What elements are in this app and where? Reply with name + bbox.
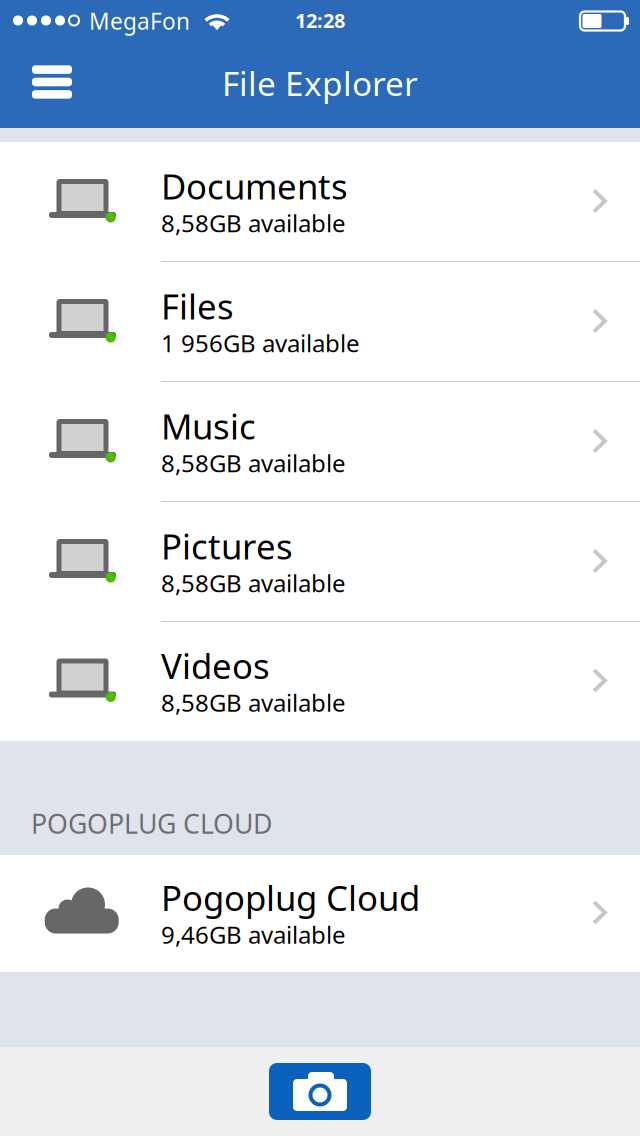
staticText: Videos: [161, 642, 270, 688]
staticText: 8,58GB available: [161, 567, 346, 599]
staticText: Files: [161, 283, 234, 329]
staticText: Music: [161, 403, 256, 449]
button[interactable]: Pictures: [0, 502, 640, 622]
staticText: 8,58GB available: [161, 686, 346, 718]
button[interactable]: Pogoplug Cloud: [0, 855, 640, 972]
button[interactable]: Music: [0, 382, 640, 502]
staticText: 12:28: [295, 7, 345, 34]
staticText: 8,58GB available: [161, 447, 346, 479]
button[interactable]: Videos: [0, 622, 640, 741]
staticText: POGOPLUG CLOUD: [31, 806, 272, 841]
staticText: Documents: [161, 163, 348, 209]
button[interactable]: Camera: [269, 1063, 371, 1120]
staticText: 1 956GB available: [161, 327, 360, 359]
staticText: 8,58GB available: [161, 207, 346, 239]
button[interactable]: Documents: [0, 142, 640, 262]
staticText: Pogoplug Cloud: [161, 874, 420, 920]
button[interactable]: Menu: [14, 48, 90, 116]
staticText: 9,46GB available: [161, 918, 346, 950]
button[interactable]: Files: [0, 262, 640, 382]
staticText: MegaFon: [89, 6, 190, 36]
staticText: File Explorer: [222, 61, 418, 105]
staticText: Pictures: [161, 523, 293, 569]
